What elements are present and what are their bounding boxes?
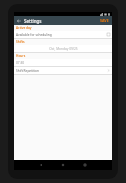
button[interactable]: Back bbox=[14, 16, 23, 25]
button[interactable]: Recent apps bbox=[82, 162, 88, 168]
staticText: Shift Repetition bbox=[16, 69, 40, 73]
staticText: SAVE bbox=[100, 18, 109, 23]
button[interactable]: Available for scheduling bbox=[14, 31, 112, 38]
button[interactable]: Shift Repetition bbox=[14, 67, 112, 74]
button[interactable]: 07:30 bbox=[14, 59, 112, 66]
staticText: Available for scheduling bbox=[16, 33, 52, 37]
staticText: Oct, Monday 09/25 bbox=[49, 47, 78, 51]
staticText: 07:30 bbox=[16, 61, 25, 65]
staticText: Settings bbox=[24, 18, 42, 24]
button[interactable]: Oct, Monday 09/25 bbox=[14, 45, 112, 52]
staticText: Hours bbox=[16, 54, 26, 58]
button[interactable]: Back bbox=[38, 162, 44, 168]
button[interactable]: Home bbox=[60, 162, 66, 168]
staticText: Active day bbox=[16, 26, 32, 30]
button[interactable]: SAVE bbox=[97, 16, 112, 25]
staticText: Shifts bbox=[16, 40, 25, 44]
